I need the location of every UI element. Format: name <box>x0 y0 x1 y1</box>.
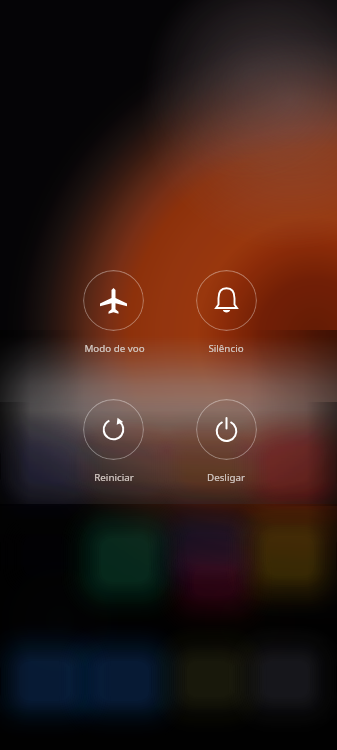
button[interactable]: Desligar <box>196 399 257 460</box>
button[interactable]: Reiniciar <box>83 399 144 460</box>
staticText: Desligar <box>207 471 245 484</box>
button[interactable]: Modo de voo <box>83 270 144 331</box>
staticText: Modo de voo <box>84 342 145 355</box>
staticText: Reiniciar <box>94 471 134 484</box>
staticText: Silêncio <box>208 342 244 355</box>
button[interactable]: Silêncio <box>196 270 257 331</box>
